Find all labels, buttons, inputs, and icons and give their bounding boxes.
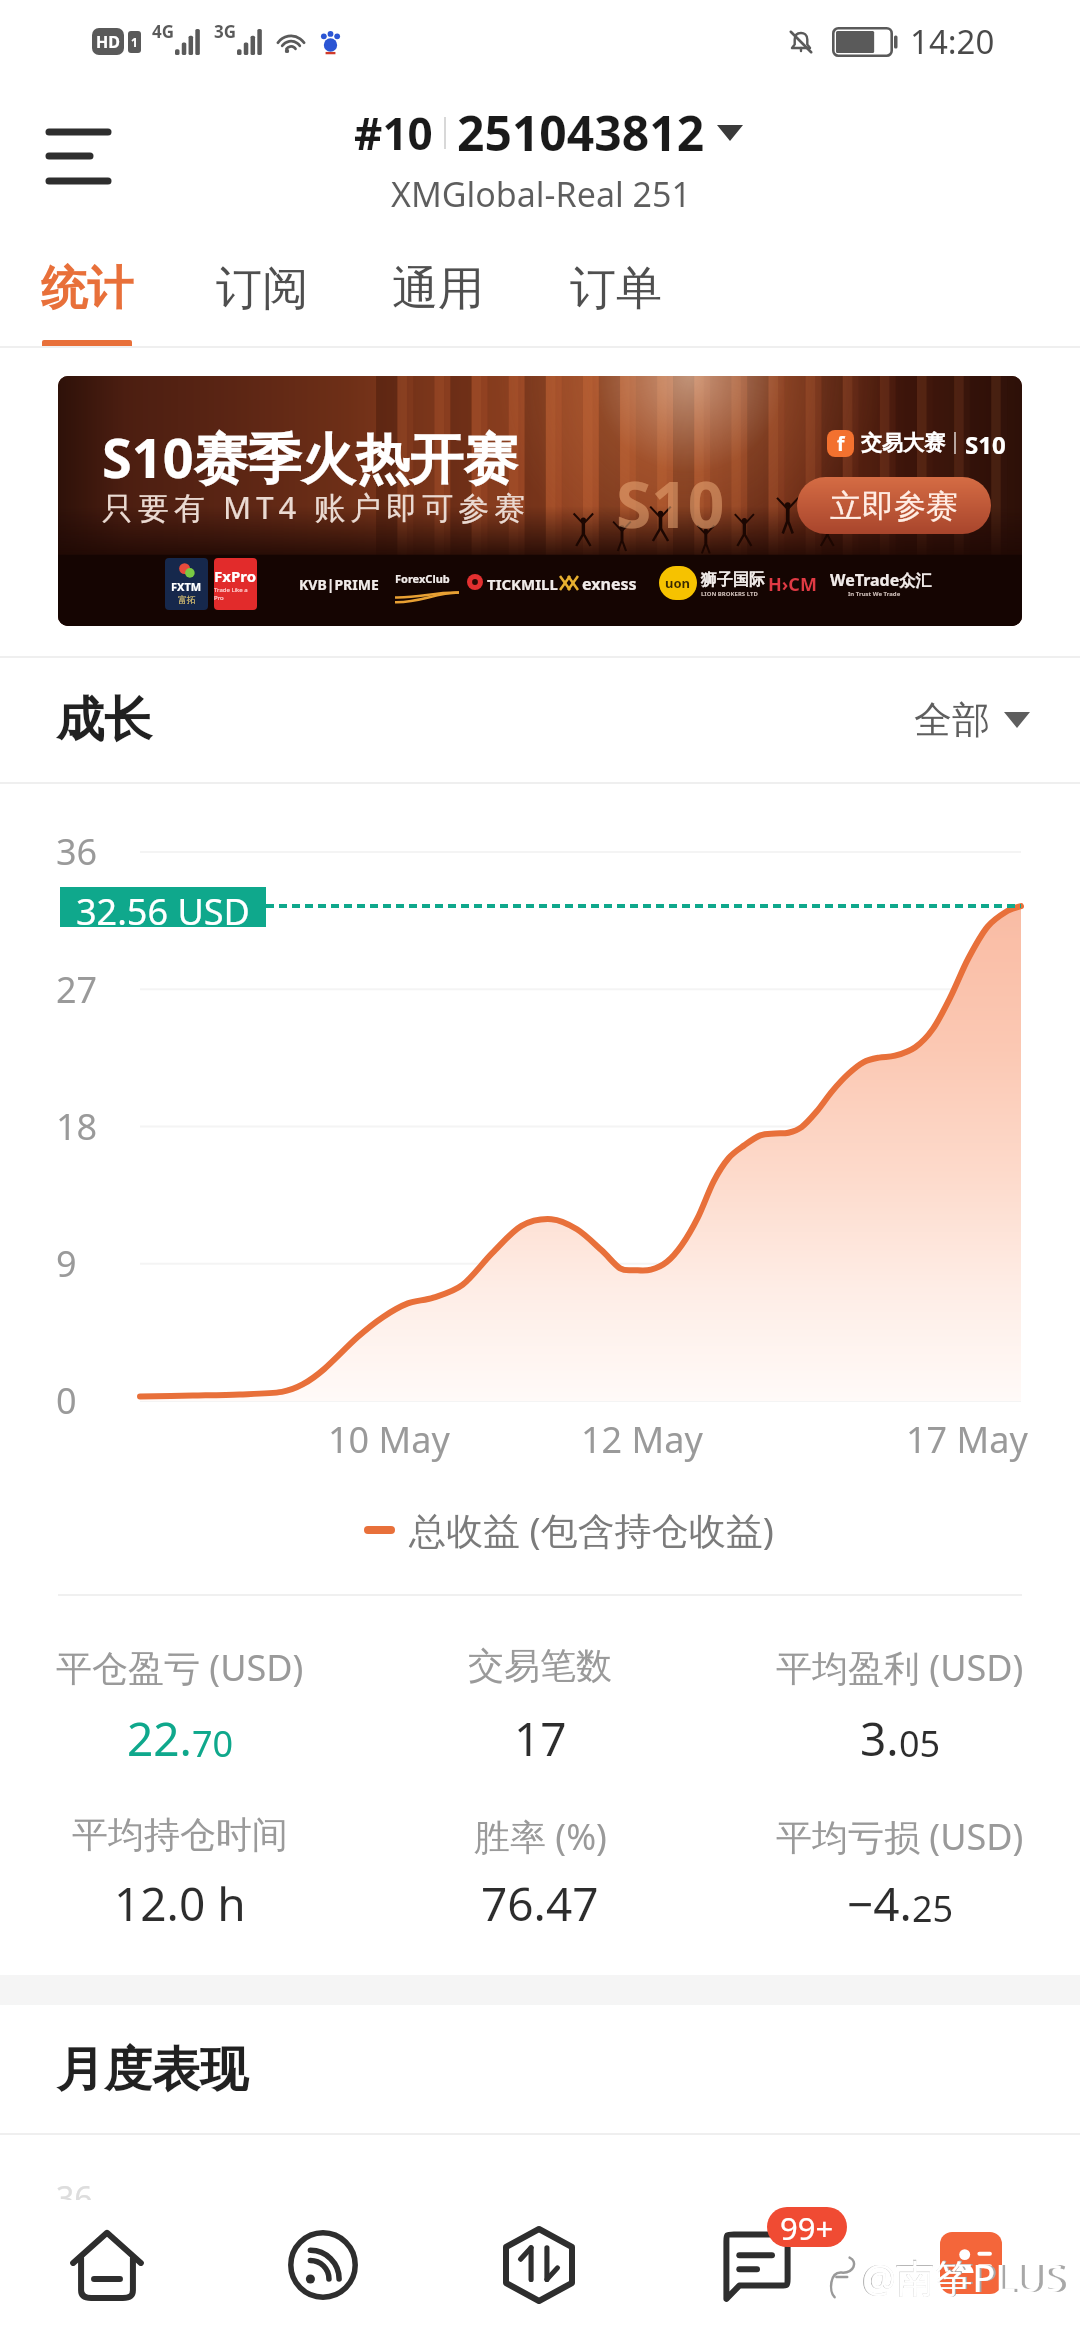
staticText: 3G bbox=[214, 20, 237, 43]
staticText: S10赛季火热开赛 bbox=[102, 420, 518, 494]
staticText: 36 bbox=[56, 2176, 93, 2220]
staticText: 17 May bbox=[906, 1415, 1028, 1464]
button[interactable]: 订单 bbox=[528, 250, 704, 348]
staticText: 平均亏损 (USD) bbox=[776, 1812, 1024, 1861]
staticText: 订单 bbox=[570, 260, 662, 318]
staticText: 平均盈利 (USD) bbox=[776, 1643, 1024, 1692]
staticText: H›CM bbox=[768, 572, 817, 597]
staticText: LION BROKERS LTD bbox=[701, 590, 758, 598]
staticText: exness bbox=[582, 573, 637, 595]
staticText: @南筝PLUS bbox=[861, 2250, 1068, 2303]
staticText: 36 bbox=[56, 827, 98, 876]
staticText: 立即参赛 bbox=[830, 486, 958, 526]
staticText: 25 bbox=[912, 1884, 954, 1933]
button[interactable]: 统计 bbox=[0, 250, 175, 348]
staticText: WeTrade众汇 bbox=[830, 569, 932, 591]
staticText: 通用 bbox=[392, 260, 484, 318]
button[interactable]: S10 bbox=[58, 376, 1022, 626]
staticText: S10 bbox=[616, 460, 725, 547]
button[interactable]: 订阅 bbox=[174, 250, 350, 348]
staticText: 251043812 bbox=[457, 100, 705, 165]
staticText: 只要有 MT4 账户即可参赛 bbox=[102, 486, 531, 528]
staticText: 统计 bbox=[41, 260, 133, 318]
staticText: 富拓 bbox=[178, 594, 196, 605]
staticText: XMGlobal-Real 251 bbox=[391, 171, 691, 217]
staticText: 0 bbox=[56, 1376, 77, 1425]
staticText: 17 bbox=[514, 1707, 567, 1770]
staticText: 成长 bbox=[56, 690, 152, 750]
staticText: In Trust We Trade bbox=[848, 590, 901, 598]
staticText: FxPro bbox=[214, 566, 257, 586]
staticText: 总收益 (包含持仓收益) bbox=[409, 1504, 774, 1555]
staticText: uon bbox=[665, 574, 691, 592]
staticText: 全部 bbox=[914, 696, 990, 744]
staticText: Trade Like a Pro bbox=[214, 586, 257, 602]
staticText: 27 bbox=[56, 965, 98, 1014]
button[interactable]: Signals bbox=[243, 2195, 403, 2335]
staticText: @南筝PLUS bbox=[862, 2251, 1064, 2303]
staticText: 4G bbox=[152, 20, 175, 43]
button[interactable]: Trade bbox=[459, 2195, 619, 2335]
button[interactable]: Home bbox=[27, 2195, 187, 2335]
staticText: 3. bbox=[860, 1707, 899, 1770]
staticText: 1 bbox=[131, 34, 138, 50]
staticText: HD bbox=[96, 31, 120, 53]
staticText: 9 bbox=[56, 1239, 77, 1288]
staticText: 22. bbox=[127, 1707, 192, 1770]
staticText: 平均持仓时间 bbox=[72, 1812, 288, 1857]
button[interactable]: Messages bbox=[677, 2196, 837, 2336]
staticText: f bbox=[837, 431, 845, 457]
staticText: KVB|PRIME bbox=[299, 575, 379, 594]
button[interactable]: Profile bbox=[940, 2232, 1002, 2294]
staticText: S10 bbox=[965, 428, 1006, 458]
button[interactable]: 通用 bbox=[350, 250, 526, 348]
staticText: 狮子国际 bbox=[701, 570, 765, 590]
staticText: FXTM bbox=[171, 579, 202, 594]
staticText: 18 bbox=[56, 1102, 98, 1151]
staticText: 99+ bbox=[780, 2207, 834, 2247]
staticText: 平仓盈亏 (USD) bbox=[56, 1643, 304, 1692]
staticText: 05 bbox=[899, 1719, 941, 1768]
staticText: 胜率 (%) bbox=[474, 1812, 607, 1861]
button[interactable]: 全部 bbox=[914, 696, 1030, 744]
staticText: 交易笔数 bbox=[468, 1643, 612, 1688]
staticText: TICKMILL bbox=[487, 574, 558, 594]
staticText: #10 bbox=[354, 103, 433, 163]
staticText: 月度表现 bbox=[56, 2040, 248, 2100]
staticText: 70 bbox=[192, 1719, 234, 1768]
staticText: 32.56 USD bbox=[76, 887, 250, 927]
staticText: ForexClub bbox=[395, 571, 450, 586]
staticText: 10 May bbox=[328, 1415, 450, 1464]
staticText: 订阅 bbox=[216, 260, 308, 318]
staticText: 交易大赛 bbox=[861, 430, 945, 456]
staticText: 76.47 bbox=[481, 1872, 599, 1935]
staticText: 12.0 h bbox=[114, 1872, 246, 1935]
staticText: 14:20 bbox=[910, 19, 995, 64]
staticText: 12 May bbox=[581, 1415, 703, 1464]
staticText: −4. bbox=[847, 1872, 912, 1935]
button[interactable]: 立即参赛 bbox=[797, 477, 991, 534]
button[interactable]: Menu bbox=[40, 112, 120, 202]
